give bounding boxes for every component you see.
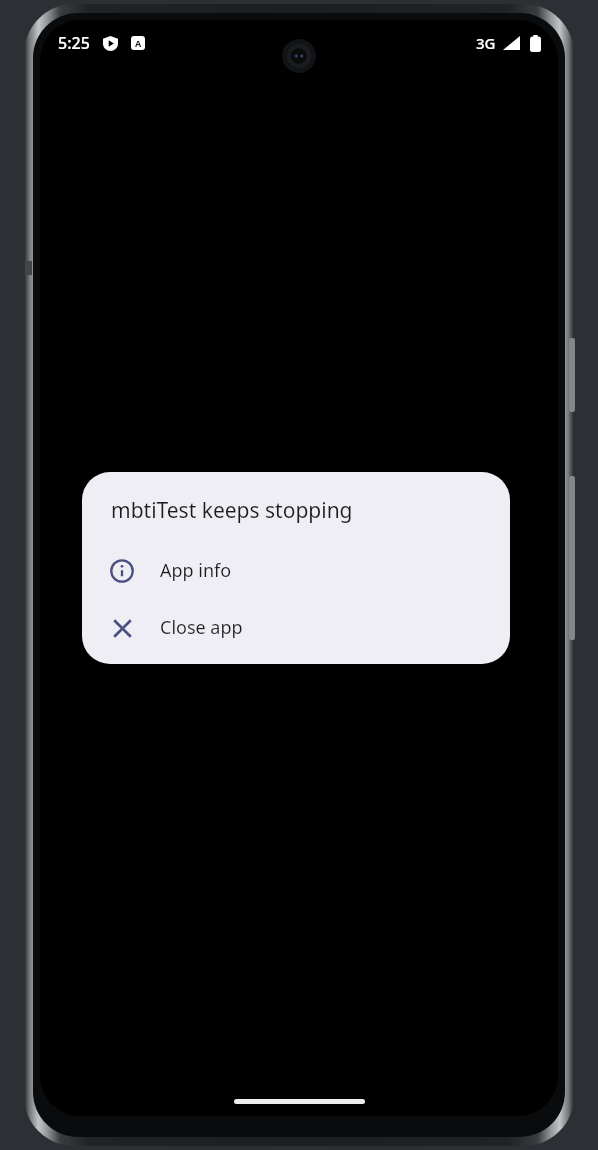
button[interactable]: App info bbox=[82, 542, 510, 599]
staticText: App info bbox=[160, 558, 232, 583]
staticText: Close app bbox=[160, 615, 243, 640]
button[interactable]: Close app bbox=[82, 599, 510, 656]
other: Close app bbox=[109, 615, 135, 641]
staticText: 5:25 bbox=[58, 32, 90, 54]
staticText: A bbox=[135, 37, 142, 49]
other: App info bbox=[109, 558, 135, 584]
staticText: mbtiTest keeps stopping bbox=[111, 496, 353, 525]
staticText: 3G bbox=[476, 33, 496, 53]
